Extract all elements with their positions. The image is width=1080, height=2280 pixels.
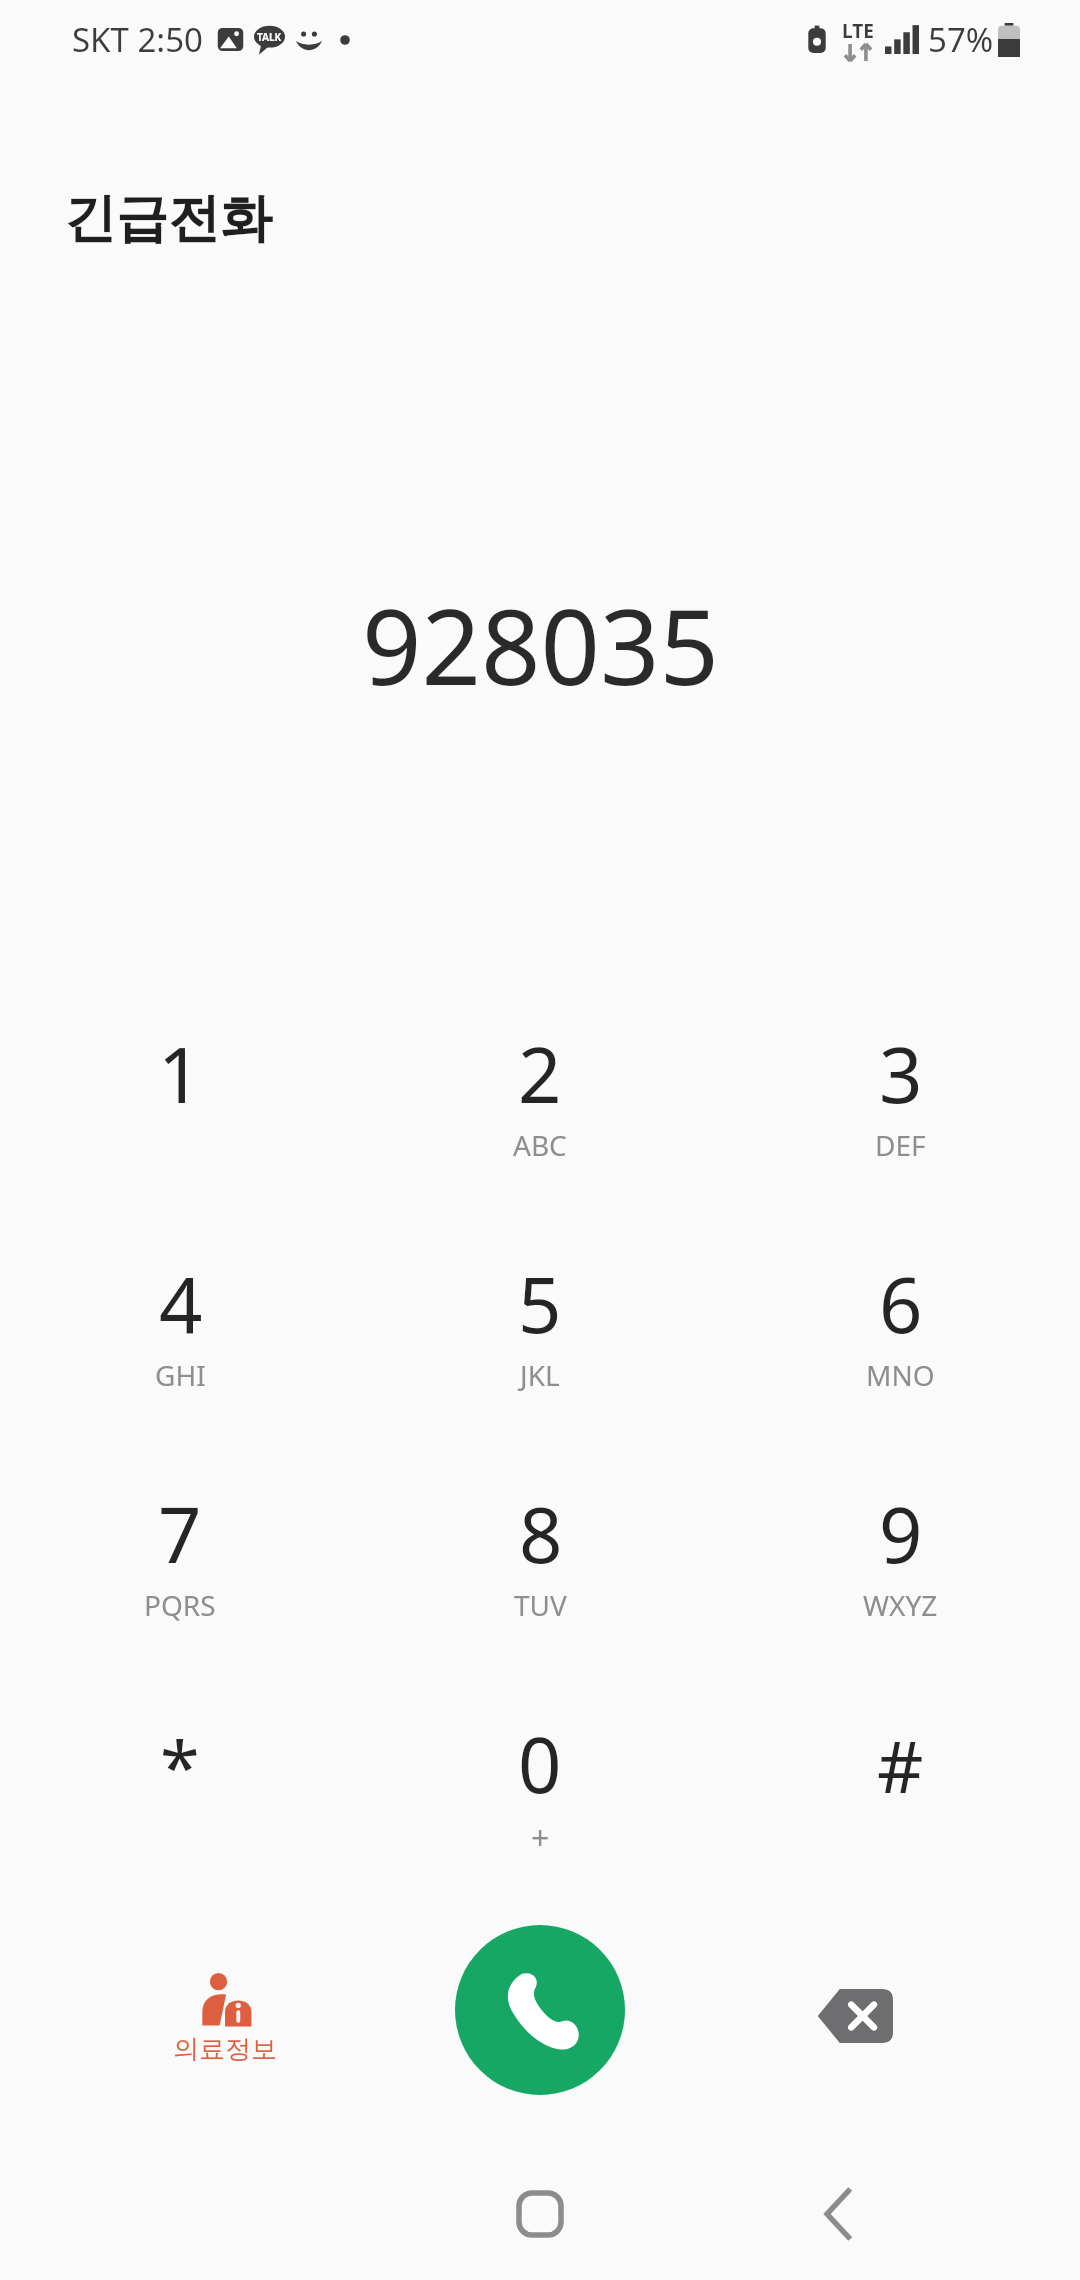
button[interactable]: 9 <box>720 1468 1080 1678</box>
button[interactable]: 5 <box>360 1238 720 1448</box>
staticText: JKL <box>520 1356 560 1394</box>
staticText: 0 <box>518 1712 562 1816</box>
staticText: + <box>531 1816 550 1860</box>
button[interactable]: 1 <box>0 1008 360 1218</box>
staticText: 긴급전화 <box>64 186 272 252</box>
button[interactable]: 2 <box>360 1008 720 1218</box>
staticText: 2 <box>518 1022 562 1126</box>
button[interactable]: 6 <box>720 1238 1080 1448</box>
button[interactable]: # <box>720 1698 1080 1908</box>
staticText: TUV <box>514 1586 567 1624</box>
staticText: 6 <box>879 1252 923 1356</box>
staticText: WXYZ <box>863 1586 938 1624</box>
staticText: 1 <box>158 1022 202 1126</box>
staticText: TALK <box>257 30 282 44</box>
staticText: 4 <box>159 1252 203 1356</box>
button[interactable]: 7 <box>0 1468 360 1678</box>
button[interactable]: 8 <box>360 1468 720 1678</box>
staticText: 928035 <box>362 574 719 716</box>
button[interactable]: 4 <box>0 1238 360 1448</box>
staticText: SKT 2:50 <box>72 17 203 62</box>
button[interactable]: 의료정보 <box>152 1973 298 2066</box>
button[interactable]: 0 <box>360 1698 720 1908</box>
button[interactable]: * <box>0 1698 360 1908</box>
staticText: 9 <box>879 1482 923 1586</box>
staticText: MNO <box>866 1356 935 1394</box>
button[interactable]: Backspace <box>780 1967 930 2065</box>
staticText: DEF <box>875 1126 926 1164</box>
staticText: # <box>877 1716 924 1814</box>
staticText: LTE <box>842 18 874 44</box>
staticText: * <box>160 1716 200 1814</box>
button[interactable]: Home <box>485 2159 595 2269</box>
staticText: GHI <box>155 1356 206 1394</box>
staticText: PQRS <box>144 1586 216 1624</box>
staticText: 7 <box>158 1482 202 1586</box>
button[interactable]: 3 <box>720 1008 1080 1218</box>
staticText: 5 <box>518 1252 562 1356</box>
button[interactable]: Back <box>785 2159 895 2269</box>
staticText: 의료정보 <box>173 2033 277 2066</box>
staticText: 3 <box>879 1022 923 1126</box>
staticText: 8 <box>519 1482 563 1586</box>
staticText: ABC <box>513 1126 567 1164</box>
button[interactable]: Call <box>455 1925 625 2095</box>
staticText: 57% <box>928 17 994 62</box>
